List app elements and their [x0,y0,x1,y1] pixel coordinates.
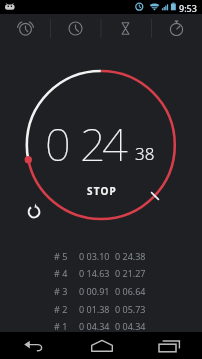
button[interactable]: Clear lap [145,186,165,206]
button[interactable]: Recent apps [135,332,202,359]
button[interactable]: # 1 [0,317,202,335]
staticText: # 3 [54,285,68,297]
staticText: # 1 [54,320,68,332]
button[interactable]: World clock [50,14,100,42]
button[interactable]: # 4 [0,264,202,282]
staticText: 4 [102,113,128,174]
staticText: 0 03.10 [79,250,110,262]
staticText: 0 14.63 [79,267,110,279]
staticText: 0 01.38 [79,303,110,315]
staticText: 0 04.34 [115,320,146,332]
button[interactable]: STOP [74,182,130,199]
staticText: 0 00.91 [79,285,110,297]
staticText: 38 [135,142,155,165]
button[interactable]: # 5 [0,247,202,265]
staticText: 0 21.27 [115,267,146,279]
staticText: # 4 [54,267,68,279]
button[interactable]: Stopwatch [151,14,202,42]
staticText: # 2 [54,303,68,315]
staticText: 9:53 [179,2,197,14]
button[interactable]: # 3 [0,282,202,300]
staticText: 2 [80,113,106,174]
button[interactable]: Reset [22,199,46,223]
button[interactable]: # 2 [0,300,202,318]
staticText: 0 04.34 [79,320,110,332]
button[interactable]: Timer [100,14,151,42]
button[interactable]: Alarm [0,14,50,42]
button[interactable]: Back [0,332,68,359]
staticText: # 5 [54,250,68,262]
staticText: STOP [87,184,117,198]
staticText: 0 [45,113,71,174]
staticText: 0 05.73 [115,303,146,315]
staticText: 0 06.64 [115,285,146,297]
staticText: 0 24.38 [115,250,146,262]
button[interactable]: Home [68,332,135,359]
